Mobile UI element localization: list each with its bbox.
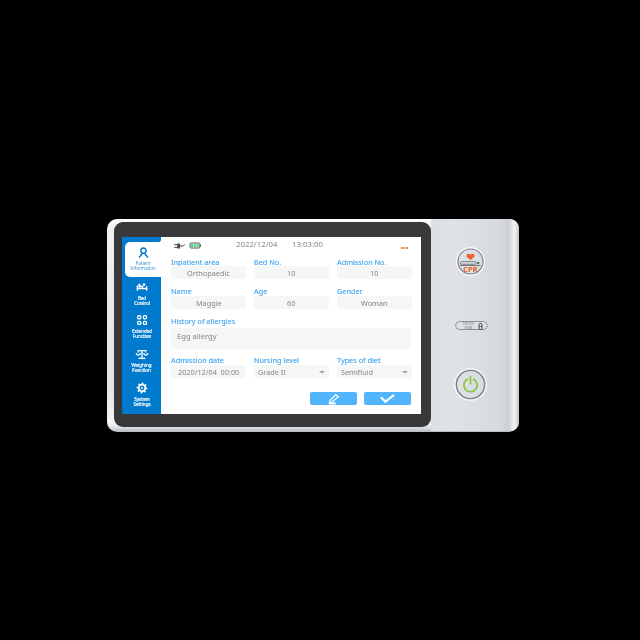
staticText: Woman xyxy=(361,298,388,308)
staticText: 10 xyxy=(370,268,379,278)
staticText: Patient Information xyxy=(130,260,156,272)
button[interactable]: Woman xyxy=(337,296,412,309)
staticText: Name xyxy=(171,286,192,296)
staticText: 60 xyxy=(287,298,296,308)
staticText: Inpatient area xyxy=(171,257,220,267)
staticText: Maggie xyxy=(196,298,222,308)
staticText: Bed No. xyxy=(254,257,282,267)
staticText: Admission No. xyxy=(337,257,387,267)
staticText: Admission date xyxy=(171,355,224,365)
staticText: Egg allergy xyxy=(177,331,217,341)
staticText: 13:03:00 xyxy=(292,239,323,250)
staticText: TOUCH HERE xyxy=(463,322,474,330)
button[interactable]: Maggie xyxy=(171,296,246,309)
staticText: Orthopaedic xyxy=(187,268,230,278)
staticText: Gender xyxy=(337,286,363,296)
button[interactable]: 10 xyxy=(254,266,329,279)
staticText: Grade II xyxy=(258,367,286,377)
button[interactable]: Weighing Function xyxy=(122,344,161,378)
staticText: 2022/12/04 xyxy=(236,239,278,250)
button[interactable]: Patient Information xyxy=(125,242,161,277)
button[interactable]: Egg allergy xyxy=(171,328,411,349)
staticText: Semifluid xyxy=(341,367,374,377)
button[interactable]: Semifluid xyxy=(337,365,412,378)
staticText: Weighing Function xyxy=(131,362,152,374)
staticText: 2020/12/04 00:00 xyxy=(178,367,240,377)
button[interactable]: NFC touch here xyxy=(455,321,488,330)
button[interactable]: 10 xyxy=(337,266,412,279)
button[interactable]: Orthopaedic xyxy=(171,266,246,279)
button[interactable]: System Settings xyxy=(122,378,161,412)
button[interactable]: Bed Control xyxy=(122,277,161,310)
staticText: Extended Function xyxy=(132,328,152,340)
staticText: CPR xyxy=(463,264,478,274)
button[interactable]: Power xyxy=(454,368,487,401)
staticText: 10 xyxy=(287,268,296,278)
staticText: Nursing level xyxy=(254,355,299,365)
button[interactable]: 2020/12/04 00:00 xyxy=(171,365,246,378)
staticText: History of allergies xyxy=(171,316,236,326)
staticText: Age xyxy=(254,286,268,296)
button[interactable]: CPR xyxy=(456,247,485,276)
staticText: Types of diet xyxy=(337,355,381,365)
button[interactable]: Edit xyxy=(310,392,357,405)
button[interactable]: Confirm xyxy=(364,392,411,405)
button[interactable]: Grade II xyxy=(254,365,329,378)
staticText: Bed Control xyxy=(134,295,150,307)
button[interactable]: 60 xyxy=(254,296,329,309)
staticText: System Settings xyxy=(133,396,151,408)
button[interactable]: Extended Function xyxy=(122,310,161,344)
